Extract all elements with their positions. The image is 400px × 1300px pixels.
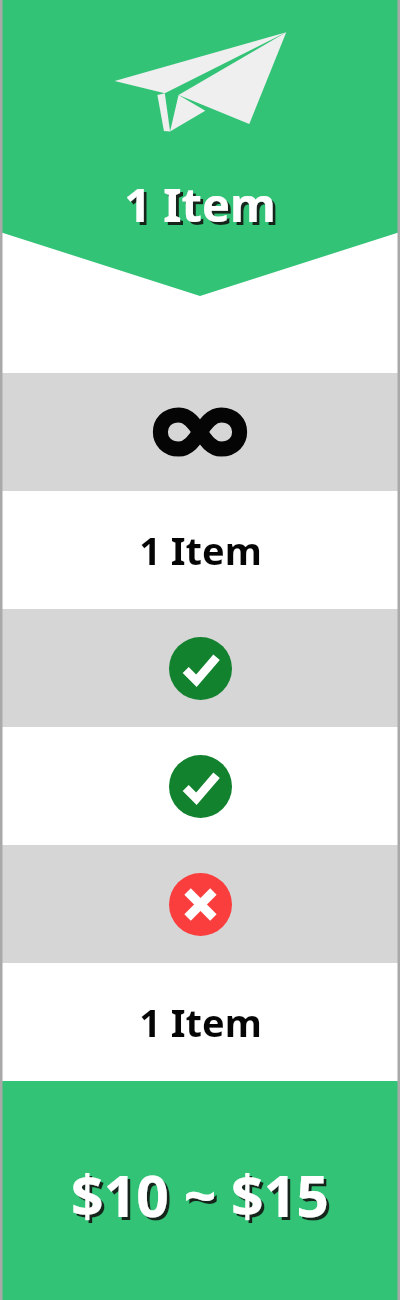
button[interactable]: 1 Item — [0, 491, 400, 609]
button[interactable]: Included — [0, 727, 400, 845]
button[interactable]: Not included — [0, 845, 400, 963]
other: Not included — [169, 873, 232, 936]
staticText: 1 Item — [139, 524, 262, 576]
button[interactable]: Unlimited — [0, 373, 400, 491]
other: Shipping — [112, 26, 288, 132]
button[interactable]: Shipping — [0, 0, 400, 373]
other: Included — [169, 637, 232, 700]
button[interactable]: Included — [0, 609, 400, 727]
staticText: 1 Item — [0, 172, 400, 236]
staticText: 1 Item — [139, 996, 262, 1048]
staticText: $10 ~ $15 — [3, 1159, 400, 1237]
other: Included — [169, 755, 232, 818]
button[interactable]: 1 Item — [0, 963, 400, 1081]
button[interactable]: $10 ~ $15 — [0, 1081, 400, 1300]
other: Unlimited — [155, 407, 245, 457]
staticText: 1 Item — [3, 175, 400, 239]
staticText: $10 ~ $15 — [0, 1156, 400, 1234]
